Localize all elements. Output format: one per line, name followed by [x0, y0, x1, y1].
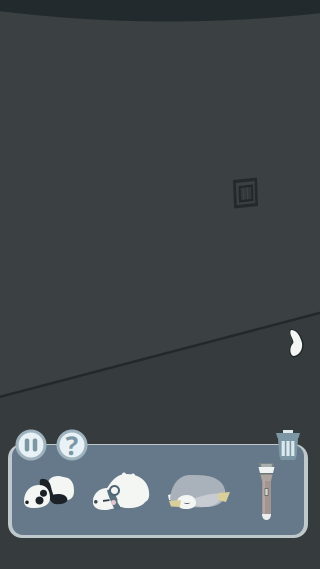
button[interactable]: Bear — [92, 472, 154, 512]
staticText: ? — [65, 427, 78, 463]
button[interactable]: Help — [56, 429, 88, 461]
button[interactable]: Panda — [22, 474, 76, 510]
button[interactable]: Pause — [15, 429, 47, 461]
button[interactable]: Flashlight — [257, 459, 277, 521]
button[interactable]: Light switch — [231, 177, 259, 209]
button[interactable]: Penguin — [168, 472, 232, 512]
button[interactable]: Trash — [276, 429, 300, 461]
